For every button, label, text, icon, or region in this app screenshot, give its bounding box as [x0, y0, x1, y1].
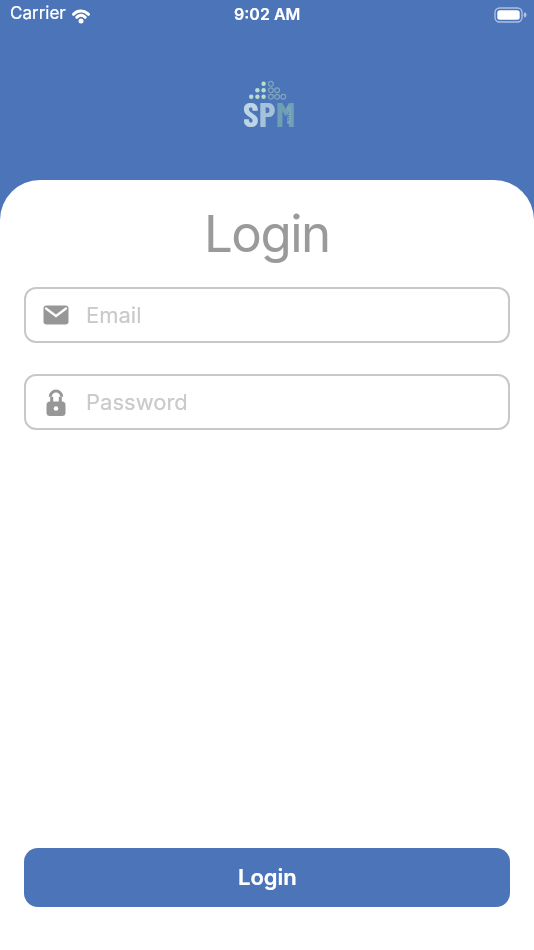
staticText: M [276, 92, 296, 134]
staticText: 9:02 AM [234, 4, 301, 23]
staticText: Login [238, 864, 297, 891]
button[interactable]: Email [24, 287, 510, 343]
staticText: Email [86, 302, 142, 329]
staticText: Password [86, 389, 188, 416]
staticText: Carrier [10, 3, 66, 24]
staticText: S [243, 92, 259, 134]
staticText: Login [204, 203, 330, 265]
button[interactable]: Login [24, 848, 510, 907]
staticText: SYSTEM [285, 106, 291, 124]
button[interactable]: Password [24, 374, 510, 430]
staticText: P [259, 92, 276, 134]
